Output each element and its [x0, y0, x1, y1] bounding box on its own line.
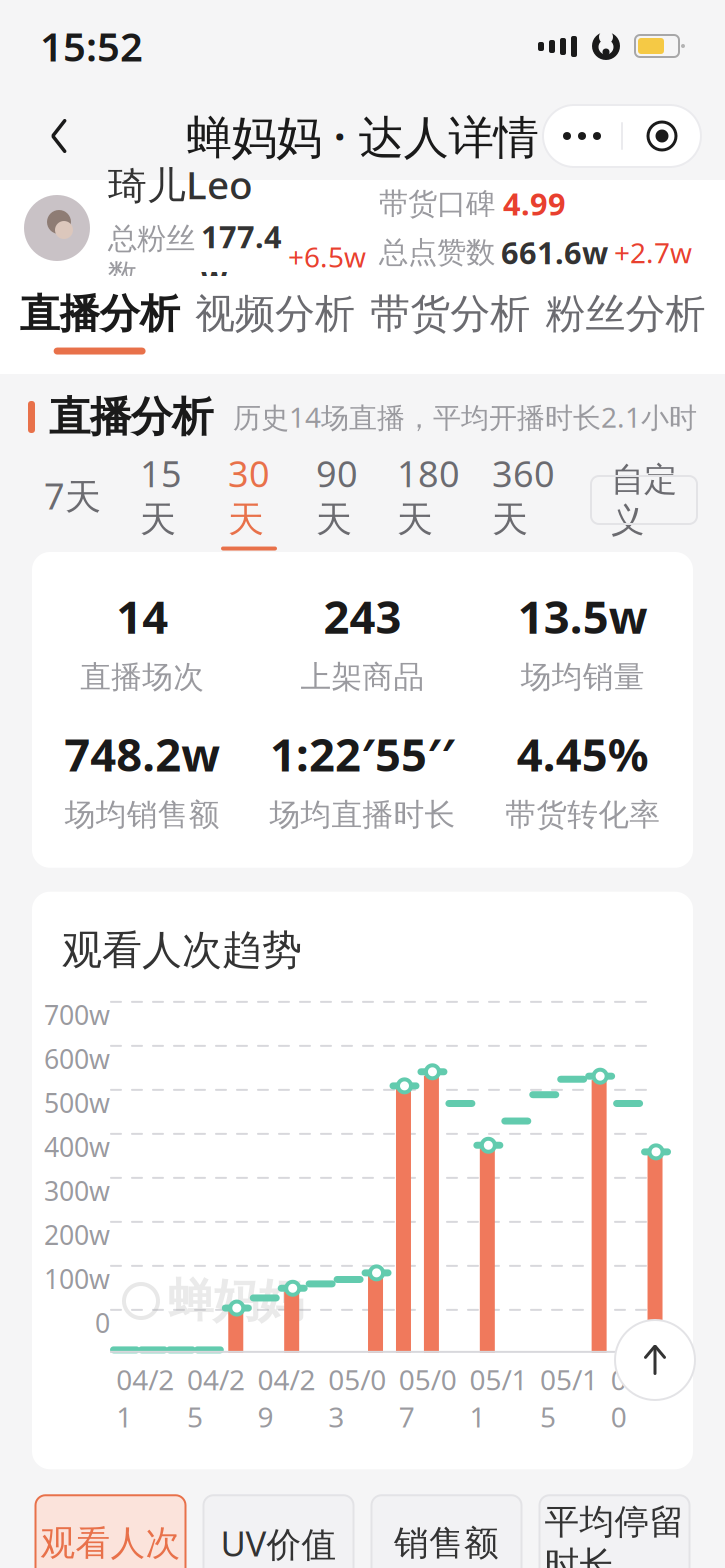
button[interactable]: 带货分析: [362, 278, 538, 366]
staticText: 180天: [397, 449, 460, 541]
staticText: 场均销售额: [65, 796, 220, 834]
staticText: 场均直播时长: [269, 796, 455, 834]
staticText: 05/15: [540, 1361, 598, 1435]
button[interactable]: 30天: [205, 469, 293, 531]
staticText: 带货转化率: [505, 796, 660, 834]
button[interactable]: 回到顶部: [615, 1320, 695, 1400]
staticText: 200w: [44, 1217, 110, 1252]
staticText: 蝉妈妈: [168, 1273, 303, 1329]
button[interactable]: 更多: [543, 105, 621, 167]
staticText: 带货分析: [370, 289, 530, 338]
button[interactable]: 琦儿Leo: [0, 180, 725, 276]
staticText: 748.2w: [64, 724, 220, 784]
staticText: 观看人次趋势: [62, 926, 302, 975]
staticText: 平均停留时长: [544, 1501, 684, 1568]
button[interactable]: 7天: [28, 469, 117, 531]
staticText: 1:22′55′′: [270, 724, 455, 784]
button[interactable]: 15天: [117, 469, 205, 531]
staticText: 4.45%: [517, 724, 649, 784]
staticText: +6.5w: [288, 238, 366, 275]
staticText: 蝉妈妈 · 达人详情: [186, 106, 538, 166]
staticText: 场均销量: [521, 658, 645, 696]
staticText: 700w: [44, 997, 110, 1032]
staticText: 观看人次: [40, 1522, 180, 1564]
staticText: 360天: [492, 449, 555, 541]
staticText: 04/25: [187, 1361, 245, 1435]
button[interactable]: 90天: [293, 469, 381, 531]
staticText: 视频分析: [195, 289, 355, 338]
staticText: 4.99: [503, 183, 566, 224]
staticText: 15:52: [40, 19, 143, 72]
staticText: 90天: [316, 449, 358, 541]
button[interactable]: 直播分析: [12, 278, 187, 366]
staticText: 04/29: [258, 1361, 316, 1435]
staticText: 600w: [44, 1041, 110, 1076]
button[interactable]: 粉丝分析: [538, 278, 713, 366]
button[interactable]: 360天: [476, 469, 571, 531]
staticText: 直播分析: [20, 289, 180, 338]
staticText: 05/07: [399, 1361, 457, 1435]
staticText: 400w: [44, 1129, 110, 1164]
staticText: 直播场次: [80, 658, 204, 696]
staticText: 05/11: [469, 1361, 527, 1435]
staticText: 14: [116, 586, 168, 646]
button[interactable]: 平均停留时长: [539, 1495, 689, 1568]
staticText: 0: [95, 1305, 110, 1340]
staticText: UV价值: [220, 1520, 336, 1566]
staticText: 粉丝分析: [545, 289, 705, 338]
staticText: 直播分析: [49, 392, 213, 442]
button[interactable]: UV价值: [203, 1495, 353, 1568]
staticText: 05/03: [328, 1361, 386, 1435]
staticText: 带货口碑: [379, 186, 495, 222]
staticText: 661.6w: [501, 232, 608, 273]
staticText: 自定义: [611, 459, 677, 541]
staticText: 7天: [44, 472, 101, 519]
staticText: 总粉丝数: [108, 221, 195, 293]
staticText: 30天: [228, 449, 270, 541]
button[interactable]: 视频分析: [187, 278, 362, 366]
staticText: 15天: [140, 449, 182, 541]
staticText: 13.5w: [518, 586, 648, 646]
staticText: 04/21: [116, 1361, 174, 1435]
button[interactable]: 180天: [381, 469, 476, 531]
staticText: +2.7w: [614, 234, 692, 271]
button[interactable]: 销售额: [371, 1495, 521, 1568]
staticText: 总点赞数: [379, 234, 495, 270]
staticText: 销售额: [394, 1522, 499, 1564]
button[interactable]: 自定义: [591, 476, 697, 524]
staticText: 177.4w: [201, 216, 282, 297]
staticText: 琦儿Leo: [108, 159, 253, 210]
staticText: 100w: [44, 1261, 110, 1296]
staticText: 300w: [44, 1173, 110, 1208]
staticText: 243: [323, 586, 401, 646]
button[interactable]: 观看人次: [35, 1495, 185, 1568]
staticText: 历史14场直播，平均开播时长2.1小时: [233, 398, 697, 436]
button[interactable]: 胶囊菜单: [623, 105, 701, 167]
staticText: 05/20: [611, 1361, 669, 1435]
staticText: 500w: [44, 1085, 110, 1120]
button[interactable]: 返回: [24, 101, 94, 171]
staticText: 上架商品: [300, 658, 424, 696]
